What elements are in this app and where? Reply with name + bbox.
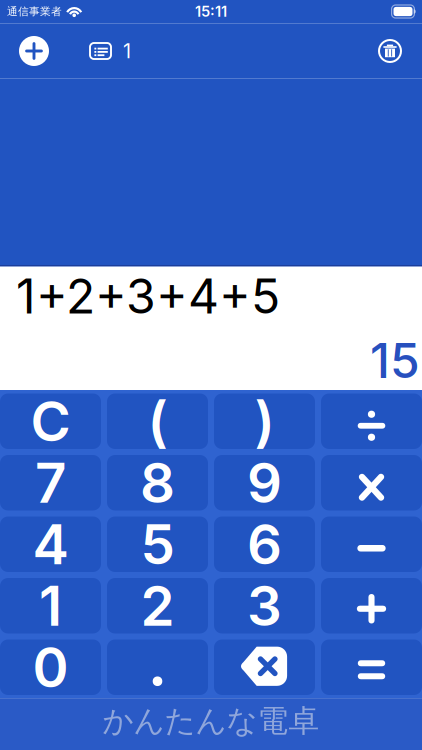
button[interactable]: 4 <box>0 516 101 572</box>
staticText: ) <box>254 389 274 453</box>
button[interactable]: バックスペース <box>214 639 315 695</box>
staticText: 9 <box>247 450 282 515</box>
button[interactable]: 新しい計算 <box>0 36 49 66</box>
button[interactable]: ) <box>214 393 315 449</box>
staticText: ( <box>147 389 167 453</box>
staticText: 8 <box>140 450 175 515</box>
staticText: 15:11 <box>195 3 227 20</box>
button[interactable]: ÷ <box>321 393 422 449</box>
button[interactable]: 0 <box>0 639 101 695</box>
button[interactable]: 2 <box>107 578 208 633</box>
staticText: 1+2+3+4+5 <box>16 268 280 324</box>
staticText: 3 <box>247 573 282 638</box>
staticText: かんたんな電卓 <box>102 702 319 740</box>
button[interactable]: ( <box>107 393 208 449</box>
staticText: 6 <box>247 512 282 576</box>
staticText: 7 <box>35 450 66 515</box>
staticText: 15 <box>370 332 420 389</box>
button[interactable]: = <box>321 639 422 695</box>
button[interactable]: 削除 <box>378 39 422 63</box>
staticText: 通信事業者 <box>7 5 62 18</box>
button[interactable]: 7 <box>0 455 101 510</box>
button[interactable]: − <box>321 516 422 572</box>
button[interactable]: 6 <box>214 516 315 572</box>
staticText: 0 <box>32 635 68 699</box>
staticText: 1 <box>123 39 131 63</box>
button[interactable]: + <box>321 578 422 633</box>
staticText: 1 <box>39 573 62 638</box>
button[interactable]: × <box>321 455 422 510</box>
staticText: 4 <box>32 512 68 576</box>
button[interactable]: 履歴 1 <box>49 39 131 63</box>
button[interactable]: 5 <box>107 516 208 572</box>
button[interactable]: 1 <box>0 578 101 633</box>
staticText: 2 <box>140 573 174 638</box>
staticText: C <box>30 389 70 453</box>
staticText: 5 <box>140 512 174 576</box>
button[interactable]: 9 <box>214 455 315 510</box>
button[interactable]: . <box>107 639 208 695</box>
button[interactable]: 8 <box>107 455 208 510</box>
button[interactable]: C <box>0 393 101 449</box>
button[interactable]: 3 <box>214 578 315 633</box>
